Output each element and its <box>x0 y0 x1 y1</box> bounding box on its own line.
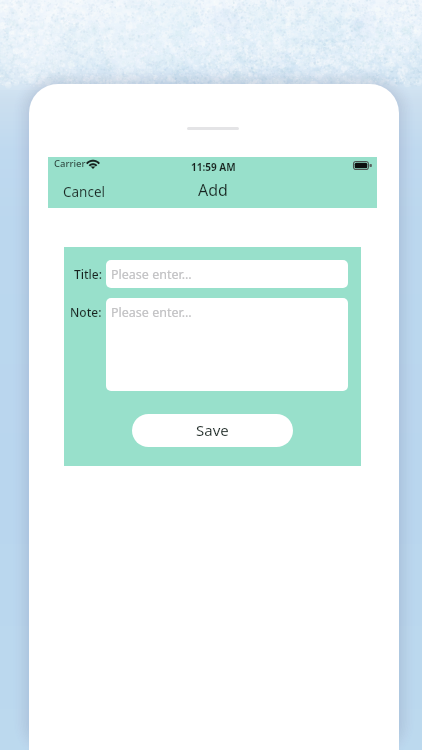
other: Battery full <box>353 161 372 170</box>
staticText: Title: <box>74 266 102 282</box>
button[interactable]: Please enter... <box>106 260 348 288</box>
staticText: Save <box>196 420 229 440</box>
staticText: Please enter... <box>111 304 192 321</box>
other: Wi-Fi signal <box>86 160 100 169</box>
staticText: Cancel <box>63 183 106 201</box>
button[interactable]: Save <box>132 414 293 447</box>
staticText: Please enter... <box>111 266 192 283</box>
staticText: 11:59 AM <box>191 160 236 174</box>
staticText: Add <box>198 179 228 201</box>
button[interactable]: Please enter... <box>106 298 348 391</box>
staticText: Note: <box>70 304 102 320</box>
staticText: Carrier <box>54 157 86 170</box>
button[interactable]: Cancel <box>48 177 121 207</box>
